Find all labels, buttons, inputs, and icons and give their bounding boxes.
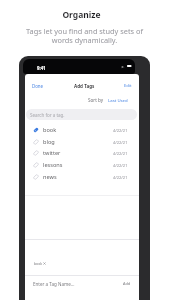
- button[interactable]: book: [25, 124, 139, 136]
- staticText: book: [43, 126, 57, 134]
- button[interactable]: book: [34, 261, 46, 266]
- staticText: Edit: [124, 83, 132, 89]
- button[interactable]: blog: [25, 136, 139, 148]
- staticText: 4/22/21: [113, 140, 128, 145]
- staticText: Sort by: [88, 97, 104, 103]
- staticText: 4/22/21: [113, 175, 128, 180]
- staticText: blog: [43, 138, 55, 146]
- staticText: 4/22/21: [113, 163, 128, 168]
- staticText: lessons: [43, 161, 63, 169]
- button[interactable]: twitter: [25, 147, 139, 159]
- staticText: Add Tags: [74, 83, 95, 89]
- button[interactable]: Done: [32, 83, 44, 89]
- staticText: 4/22/21: [113, 128, 128, 133]
- staticText: Tags let you find and study sets of word…: [26, 26, 143, 45]
- button[interactable]: news: [25, 171, 139, 183]
- staticText: Enter a Tag Name...: [33, 281, 75, 287]
- staticText: news: [43, 173, 57, 181]
- button[interactable]: Last Used: [108, 97, 128, 103]
- staticText: Organize: [62, 9, 101, 21]
- button[interactable]: Add: [123, 281, 131, 286]
- staticText: 9:41: [37, 65, 46, 71]
- other: Remove tag: [43, 262, 46, 265]
- staticText: 4/22/21: [113, 151, 128, 156]
- button[interactable]: Search for a tag.: [26, 109, 137, 120]
- staticText: Done: [32, 83, 44, 89]
- button[interactable]: lessons: [25, 159, 139, 171]
- button[interactable]: Edit: [124, 83, 132, 89]
- staticText: Search for a tag.: [30, 112, 65, 118]
- staticText: book: [34, 261, 42, 266]
- staticText: twitter: [43, 149, 61, 157]
